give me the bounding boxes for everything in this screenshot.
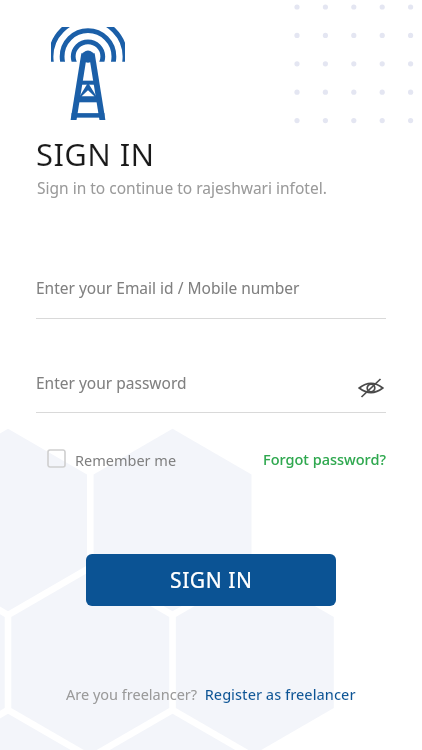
staticText: Remember me [75, 450, 177, 470]
staticText: SIGN IN [36, 133, 155, 175]
staticText: Enter your password [36, 372, 187, 393]
staticText: Forgot password? [263, 449, 386, 469]
button[interactable]: Remember me [44, 445, 189, 472]
staticText: Sign in to continue to rajeshwari infote… [37, 177, 327, 198]
staticText: Enter your Email id / Mobile number [36, 277, 300, 298]
button[interactable]: Are you freelancer? Register as freelanc… [66, 684, 356, 704]
button[interactable]: Enter your password [36, 367, 346, 412]
button[interactable]: SIGN IN [86, 554, 336, 606]
button[interactable]: Show password [352, 371, 390, 405]
staticText: Are you freelancer? Register as freelanc… [66, 684, 356, 704]
button[interactable]: Forgot password? [252, 445, 386, 472]
button[interactable]: Enter your Email id / Mobile number [36, 272, 386, 319]
staticText: SIGN IN [170, 566, 253, 595]
